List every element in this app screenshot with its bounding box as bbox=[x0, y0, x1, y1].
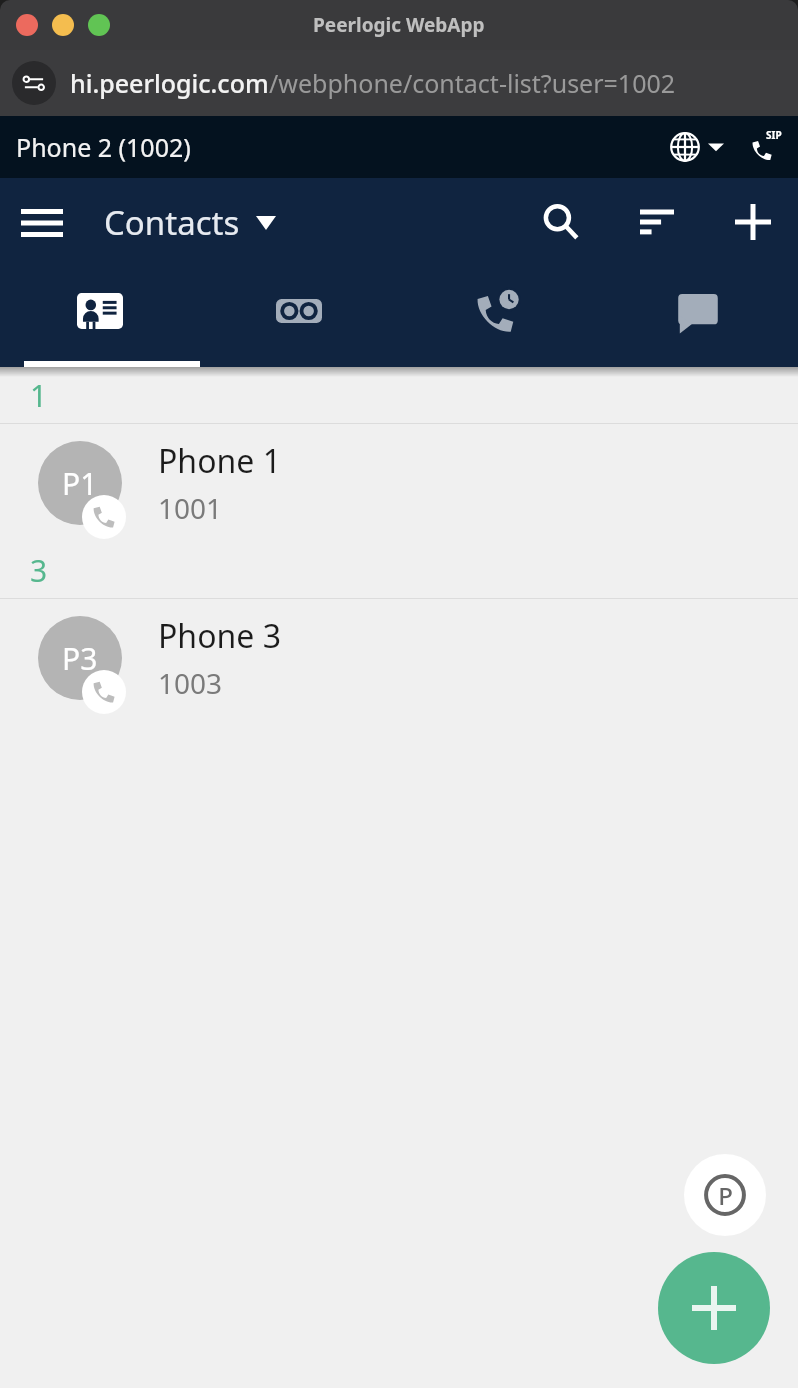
button[interactable]: Menu bbox=[14, 195, 70, 251]
staticText: hi.peerlogic.com bbox=[70, 66, 269, 100]
button[interactable]: Window control bbox=[88, 14, 110, 36]
button[interactable]: Contacts tab bbox=[0, 266, 199, 367]
button[interactable]: Site settings bbox=[12, 61, 56, 105]
staticText: Peerlogic WebApp bbox=[313, 12, 485, 38]
button[interactable]: P3 bbox=[0, 599, 798, 717]
staticText: P3 bbox=[62, 638, 98, 679]
button[interactable]: Window control bbox=[16, 14, 38, 36]
button[interactable]: Contacts bbox=[100, 192, 280, 253]
staticText: 3 bbox=[30, 550, 48, 591]
button[interactable]: Search bbox=[530, 191, 592, 253]
staticText: Phone 1 bbox=[158, 439, 281, 483]
staticText: SIP bbox=[766, 128, 782, 142]
button[interactable]: Voicemail tab bbox=[199, 266, 398, 367]
staticText: P bbox=[718, 1179, 733, 1212]
button[interactable]: Messages tab bbox=[598, 266, 798, 367]
staticText: 1003 bbox=[158, 664, 223, 702]
button[interactable]: Park call bbox=[684, 1154, 766, 1236]
button[interactable]: Window control bbox=[52, 14, 74, 36]
button[interactable]: Language bbox=[666, 132, 728, 162]
staticText: Contacts bbox=[104, 200, 240, 245]
staticText: 1 bbox=[30, 375, 48, 416]
button[interactable]: Sort bbox=[626, 191, 688, 253]
button[interactable]: New call bbox=[658, 1252, 770, 1364]
button[interactable]: P1 bbox=[0, 424, 798, 542]
staticText: P1 bbox=[62, 463, 98, 504]
staticText: Phone 3 bbox=[158, 614, 281, 658]
button[interactable]: Call history tab bbox=[398, 266, 598, 367]
staticText: /webphone/contact-list?user=1002 bbox=[269, 66, 676, 100]
button[interactable]: SIP status bbox=[742, 127, 782, 167]
staticText: 1001 bbox=[158, 489, 223, 527]
button[interactable]: Add contact bbox=[722, 191, 784, 253]
staticText: Phone 2 (1002) bbox=[16, 130, 191, 164]
